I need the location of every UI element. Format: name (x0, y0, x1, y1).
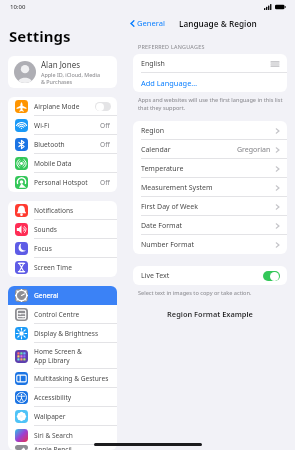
staticText: Language & Region (179, 18, 257, 29)
button[interactable]: Sounds (8, 220, 117, 239)
button[interactable]: Number Format (133, 235, 287, 254)
button[interactable]: Personal Hotspot (8, 173, 117, 192)
staticText: 10:00 (10, 3, 26, 11)
staticText: Airplane Mode (34, 102, 80, 111)
button[interactable]: English (133, 54, 287, 73)
button[interactable]: Display & Brightness (8, 324, 117, 343)
staticText: Accessibility (34, 393, 72, 402)
staticText: Display & Brightness (34, 329, 99, 338)
staticText: Region Format Example (125, 309, 295, 319)
button[interactable]: Focus (8, 239, 117, 258)
button[interactable]: Live Text (133, 266, 287, 285)
button[interactable]: Bluetooth (8, 135, 117, 154)
staticText: Number Format (141, 240, 194, 250)
staticText: Sounds (34, 225, 57, 234)
button[interactable]: Alan Jones (8, 56, 117, 88)
staticText: Multitasking & Gestures (34, 374, 109, 383)
staticText: General (137, 18, 165, 28)
staticText: Gregorian (237, 145, 271, 155)
button[interactable]: Measurement System (133, 178, 287, 197)
button[interactable]: First Day of Week (133, 197, 287, 216)
staticText: Wi-Fi (34, 121, 50, 130)
staticText: Notifications (34, 206, 74, 215)
button[interactable]: Multitasking & Gestures (8, 369, 117, 388)
staticText: First Day of Week (141, 202, 198, 212)
staticText: Apple ID, iCloud, Media (41, 71, 100, 78)
other: Reorder (271, 61, 279, 67)
button[interactable]: Accessibility (8, 388, 117, 407)
button[interactable]: Region (133, 121, 287, 140)
button[interactable]: Siri & Search (8, 426, 117, 445)
button[interactable]: Temperature (133, 159, 287, 178)
button[interactable]: Control Centre (8, 305, 117, 324)
button[interactable]: Apple Pencil (8, 445, 117, 450)
staticText: Alan Jones (41, 59, 80, 70)
staticText: PREFERRED LANGUAGES (138, 43, 205, 50)
button[interactable]: Airplane Mode (8, 97, 117, 116)
button[interactable]: Wallpaper (8, 407, 117, 426)
staticText: Mobile Data (34, 159, 72, 168)
staticText: Home Screen & (34, 347, 82, 356)
staticText: Siri & Search (34, 431, 73, 440)
button[interactable]: Screen Time (8, 258, 117, 277)
button[interactable]: Mobile Data (8, 154, 117, 173)
button[interactable]: Wi-Fi (8, 116, 117, 135)
staticText: General (34, 291, 59, 300)
button[interactable]: Add Language… (133, 73, 287, 92)
staticText: Measurement System (141, 183, 213, 193)
button[interactable] (95, 102, 111, 111)
staticText: App Library (34, 356, 70, 365)
staticText: Live Text (141, 271, 170, 281)
button[interactable]: Date Format (133, 216, 287, 235)
staticText: Add Language… (141, 78, 198, 88)
staticText: Date Format (141, 221, 183, 231)
button[interactable]: Calendar (133, 140, 287, 159)
staticText: Region (141, 126, 164, 136)
button[interactable]: Notifications (8, 201, 117, 220)
staticText: Apple Pencil (34, 445, 72, 450)
staticText: English (141, 59, 165, 69)
staticText: Focus (34, 244, 52, 253)
other: Back (130, 19, 135, 28)
staticText: Wallpaper (34, 412, 66, 421)
staticText: Off (100, 121, 110, 130)
button[interactable]: Home Screen & (8, 343, 117, 369)
staticText: & Purchases (41, 78, 73, 85)
staticText: Apps and websites will use the first lan… (138, 96, 283, 104)
staticText: Off (100, 178, 110, 187)
staticText: Calendar (141, 145, 171, 155)
button[interactable]: Back (130, 18, 165, 28)
staticText: Screen Time (34, 263, 72, 272)
button[interactable]: General (8, 286, 117, 305)
staticText: Settings (9, 26, 71, 46)
staticText: Select text in images to copy or take ac… (138, 289, 252, 297)
staticText: Control Centre (34, 310, 80, 319)
button[interactable] (263, 271, 280, 281)
staticText: Personal Hotspot (34, 178, 88, 187)
staticText: Off (100, 140, 110, 149)
staticText: that they support. (138, 104, 186, 112)
staticText: Temperature (141, 164, 184, 174)
staticText: Bluetooth (34, 140, 65, 149)
